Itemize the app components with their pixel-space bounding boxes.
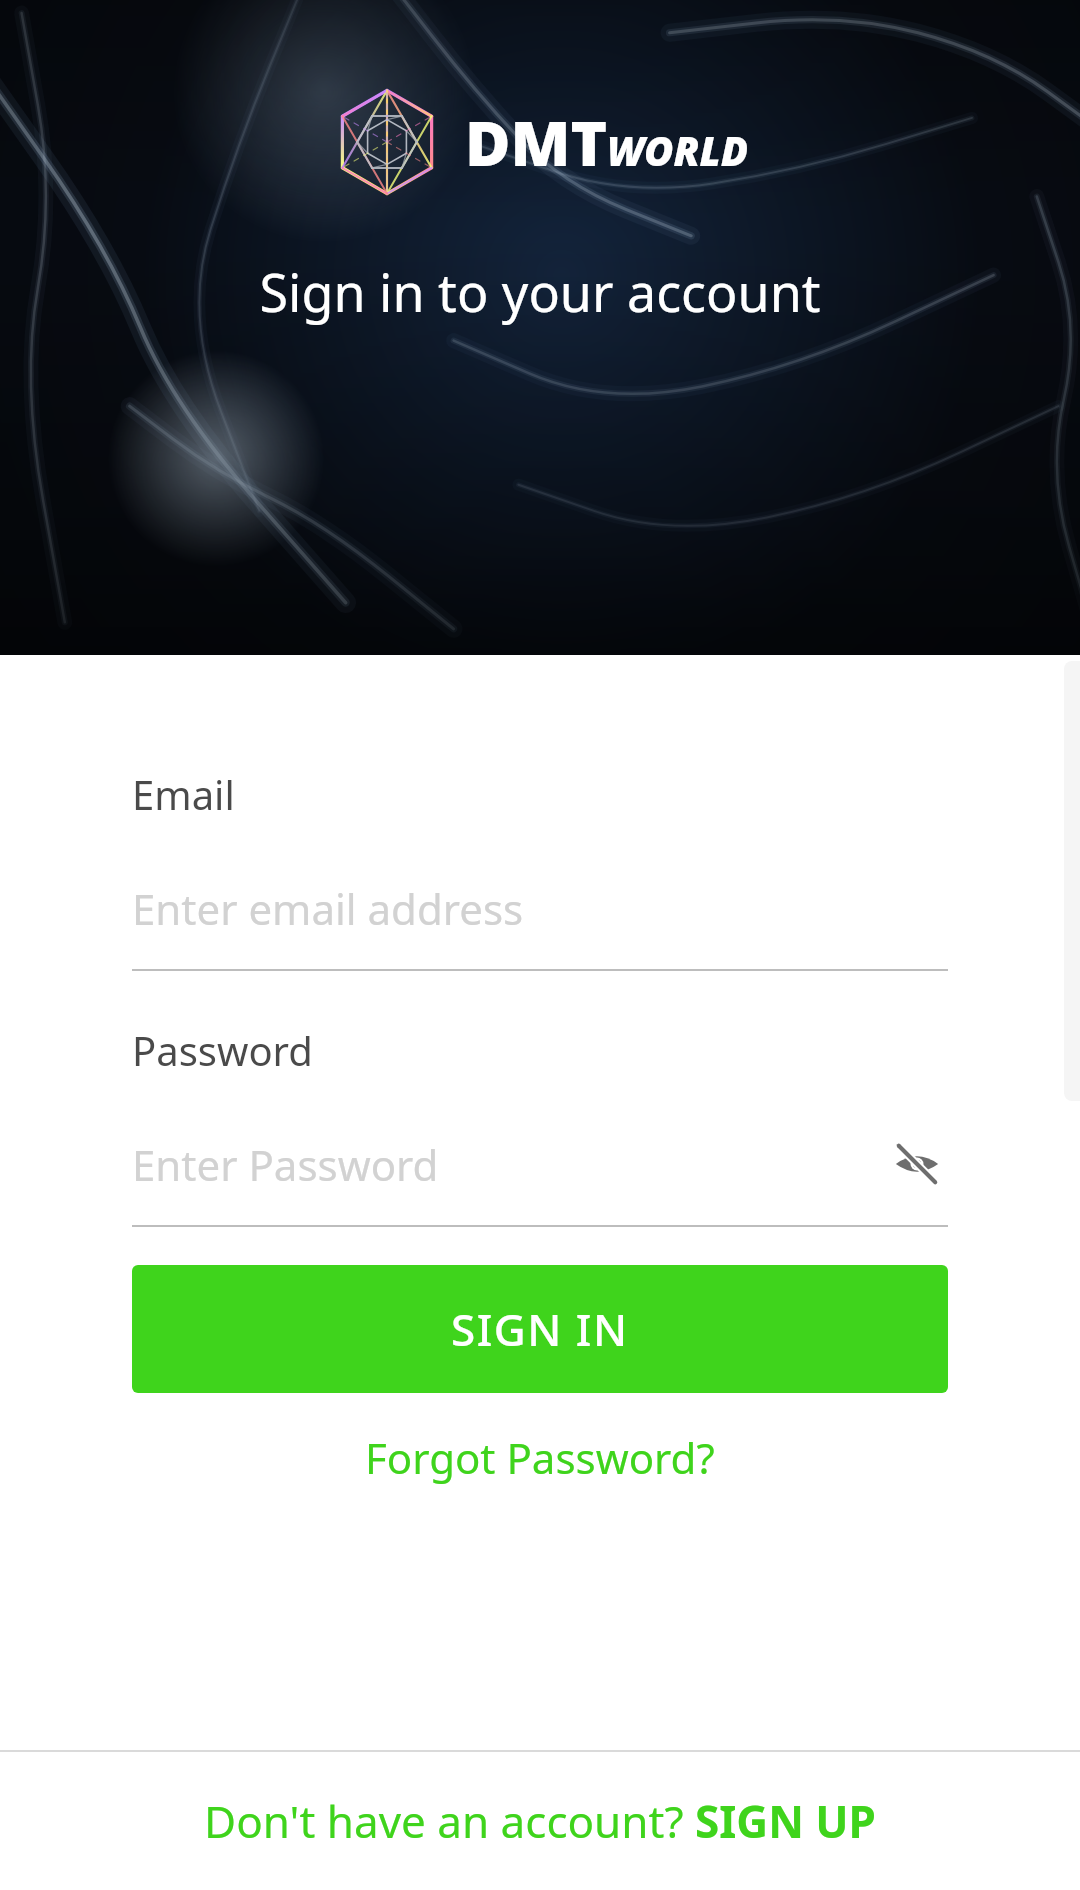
button[interactable]: Don't have an account? SIGN UP [0,1752,1080,1890]
staticText: DMTWORLD [465,100,749,184]
staticText: Enter Password [132,1136,439,1193]
staticText: Password [132,1023,313,1077]
staticText: Don't have an account? SIGN UP [204,1791,876,1851]
button[interactable]: Enter Password [132,1133,886,1195]
button[interactable]: Show password [886,1133,948,1195]
staticText: Forgot Password? [365,1429,715,1486]
staticText: SIGN IN [451,1299,629,1359]
staticText: Enter email address [132,880,524,937]
button[interactable]: Enter email address [132,877,948,939]
button[interactable]: SIGN IN [132,1265,948,1393]
staticText: Sign in to your account [259,256,821,327]
staticText: Email [132,767,235,821]
button[interactable]: Forgot Password? [349,1415,731,1500]
